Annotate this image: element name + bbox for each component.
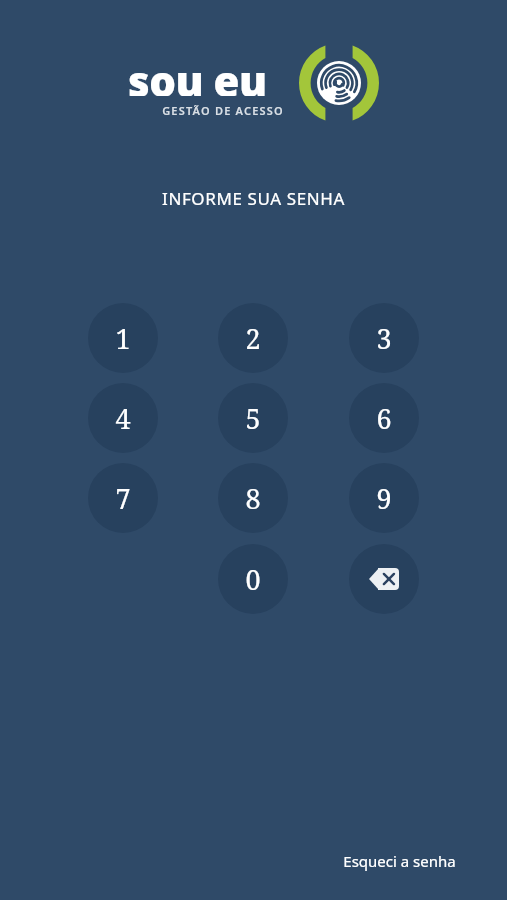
staticText: sou eu: [128, 52, 267, 96]
staticText: 4: [115, 400, 131, 437]
button[interactable]: 2: [218, 303, 288, 373]
staticText: 1: [115, 320, 131, 357]
button[interactable]: 6: [349, 383, 419, 453]
button[interactable]: 1: [88, 303, 158, 373]
button[interactable]: 7: [88, 463, 158, 533]
staticText: 8: [245, 480, 261, 517]
button[interactable]: Apagar: [349, 544, 419, 614]
staticText: 0: [245, 561, 261, 598]
staticText: 3: [376, 320, 392, 357]
button[interactable]: Esqueci a senha: [335, 845, 463, 877]
staticText: 6: [376, 400, 392, 437]
button[interactable]: 0: [218, 544, 288, 614]
staticText: Esqueci a senha: [343, 851, 456, 871]
staticText: GESTÃO DE ACESSO: [162, 103, 284, 118]
staticText: 2: [245, 320, 261, 357]
button[interactable]: 8: [218, 463, 288, 533]
staticText: 5: [245, 400, 261, 437]
button[interactable]: 5: [218, 383, 288, 453]
button[interactable]: 4: [88, 383, 158, 453]
staticText: INFORME SUA SENHA: [162, 187, 345, 210]
staticText: 7: [115, 480, 131, 517]
button[interactable]: 3: [349, 303, 419, 373]
staticText: 9: [376, 480, 392, 517]
button[interactable]: 9: [349, 463, 419, 533]
